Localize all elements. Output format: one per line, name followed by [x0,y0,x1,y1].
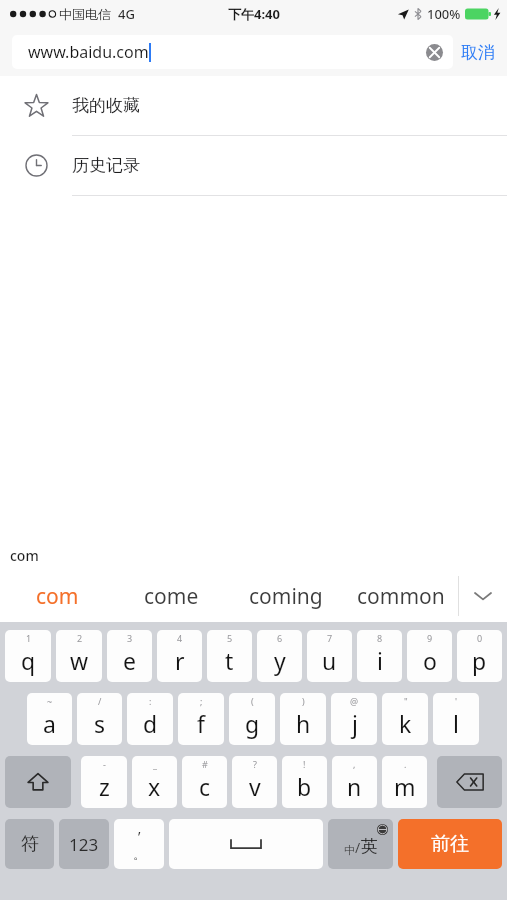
staticText: ~ [47,695,53,707]
staticText: , [353,758,356,770]
staticText: ( [251,695,254,707]
staticText: g [245,708,260,739]
button[interactable]: common [343,570,458,622]
button[interactable]: 4 [157,630,202,682]
button[interactable]: Hide keyboard [459,570,507,622]
button[interactable]: Clear [419,37,449,67]
button[interactable]: 历史记录 [0,136,507,195]
staticText: 符 [21,833,39,856]
staticText: q [21,645,36,676]
staticText: come [144,582,199,611]
staticText: ? [253,758,257,770]
button[interactable]: ( [229,693,275,745]
staticText: h [296,708,311,739]
staticText: 英 [361,836,378,857]
button[interactable]: " [382,693,428,745]
button[interactable]: 我的收藏 [0,76,507,135]
staticText: 1 [26,632,32,644]
button[interactable]: _ [132,756,177,808]
button[interactable]: 6 [257,630,302,682]
button[interactable]: 3 [107,630,152,682]
button[interactable]: come [114,570,228,622]
staticText: ; [200,695,203,707]
button[interactable]: : [127,693,173,745]
button[interactable]: www.baidu.com [12,35,453,69]
button[interactable]: 2 [56,630,102,682]
staticText: / [98,695,102,707]
button[interactable]: 取消 [461,42,495,63]
button[interactable]: Shift [5,756,71,808]
staticText: b [297,771,312,802]
button[interactable]: 5 [207,630,252,682]
button[interactable]: 前往 [398,819,502,869]
staticText: d [143,708,158,739]
staticText: / [355,838,361,857]
staticText: 9 [427,632,433,644]
button[interactable]: , [332,756,377,808]
button[interactable]: 9 [407,630,452,682]
staticText: - [103,758,106,770]
button[interactable]: @ [331,693,377,745]
button[interactable]: ? [232,756,277,808]
button[interactable]: com [0,570,114,622]
button[interactable]: ! [282,756,327,808]
button[interactable]: 1 [5,630,51,682]
button[interactable]: 123 [59,819,109,869]
staticText: l [453,708,459,739]
staticText: i [377,645,383,676]
button[interactable]: ~ [27,693,72,745]
button[interactable]: Switch language [328,819,393,869]
staticText: 3 [127,632,133,644]
staticText: " [404,695,408,707]
button[interactable]: 符 [5,819,54,869]
staticText: @ [350,695,359,707]
staticText: 7 [327,632,333,644]
staticText: 123 [69,833,99,856]
staticText: common [357,582,445,611]
staticText: t [225,645,234,676]
button[interactable]: # [182,756,227,808]
staticText: . [404,758,407,770]
staticText: x [148,771,161,802]
staticText: c [199,771,211,802]
staticText: y [274,645,286,676]
staticText: 下午4:40 [228,5,280,23]
staticText: 100% [427,5,461,23]
button[interactable]: Space [169,819,323,869]
button[interactable]: 7 [307,630,352,682]
staticText: _ [153,758,157,770]
button[interactable]: ) [280,693,326,745]
staticText: 8 [377,632,383,644]
staticText: m [394,771,416,802]
button[interactable]: Delete [437,756,502,808]
button[interactable]: 0 [457,630,502,682]
staticText: 4 [177,632,183,644]
staticText: 0 [477,632,483,644]
staticText: 2 [77,632,83,644]
staticText: r [175,645,185,676]
button[interactable]: ' [433,693,479,745]
staticText: ) [302,695,305,707]
staticText: 前往 [431,832,469,856]
staticText: 4G [118,5,135,23]
staticText: k [399,708,412,739]
button[interactable]: Punctuation [114,819,164,869]
button[interactable]: coming [228,570,343,622]
staticText: 中国电信 [59,6,111,22]
button[interactable]: / [77,693,122,745]
staticText: z [99,771,110,802]
button[interactable]: . [382,756,427,808]
staticText: u [322,645,337,676]
button[interactable]: - [81,756,127,808]
button[interactable]: 8 [357,630,402,682]
staticText: ! [303,758,306,770]
staticText: coming [249,582,323,611]
staticText: : [149,695,152,707]
staticText: com [36,582,79,611]
staticText: v [249,771,261,802]
staticText: 我的收藏 [72,95,140,116]
staticText: e [123,645,136,676]
staticText: 。 [133,846,146,862]
button[interactable]: ; [178,693,224,745]
staticText: o [423,645,437,676]
